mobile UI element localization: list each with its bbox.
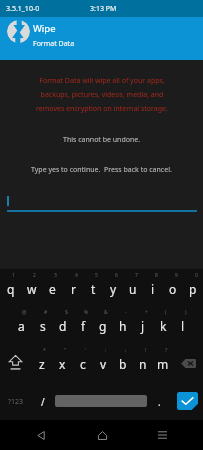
button[interactable]: ) xyxy=(173,306,193,344)
button[interactable]: Recents xyxy=(142,420,182,450)
staticText: o xyxy=(169,281,177,297)
staticText: # xyxy=(44,309,48,316)
button[interactable]: ! xyxy=(133,344,153,382)
staticText: 3 xyxy=(54,272,57,279)
button[interactable]: % xyxy=(73,306,93,344)
staticText: u xyxy=(129,281,137,297)
button[interactable]: Home xyxy=(82,420,122,450)
staticText: g xyxy=(99,318,107,334)
button[interactable]: ' xyxy=(73,344,93,382)
staticText: Format Data will wipe all of your apps, … xyxy=(36,76,168,113)
button[interactable]: . xyxy=(147,382,171,420)
staticText: " xyxy=(64,347,67,354)
staticText: v xyxy=(100,356,107,372)
staticText: * xyxy=(43,347,46,354)
button[interactable]: $ xyxy=(53,306,73,344)
staticText: z xyxy=(39,356,45,372)
staticText: a xyxy=(18,318,25,334)
staticText: : xyxy=(105,347,107,354)
staticText: ! xyxy=(145,347,147,354)
staticText: / xyxy=(41,395,45,409)
staticText: 2 xyxy=(33,272,36,279)
button[interactable]: " xyxy=(52,344,73,382)
staticText: @ xyxy=(22,309,27,316)
button[interactable]: 7 xyxy=(123,269,143,306)
staticText: j xyxy=(141,318,145,334)
button[interactable]: ( xyxy=(153,306,173,344)
button[interactable]: ? xyxy=(153,344,173,382)
staticText: n xyxy=(139,356,147,372)
staticText: % xyxy=(84,309,89,316)
button[interactable]: Back xyxy=(21,420,61,450)
staticText: . xyxy=(158,395,161,409)
staticText: s xyxy=(40,318,46,334)
staticText: 9 xyxy=(175,272,178,279)
staticText: ( xyxy=(165,309,167,316)
button[interactable]: 5 xyxy=(83,269,103,306)
button[interactable]: Backspace xyxy=(173,344,203,382)
button[interactable]: Enter xyxy=(171,382,203,420)
button[interactable]: : xyxy=(93,344,113,382)
button[interactable]: Shift xyxy=(0,344,31,382)
staticText: Format Data xyxy=(33,39,75,49)
staticText: ' xyxy=(85,347,87,354)
button[interactable]: & xyxy=(93,306,113,344)
staticText: t xyxy=(91,281,96,297)
staticText: b xyxy=(119,356,127,372)
staticText: & xyxy=(104,309,108,316)
staticText: ?123 xyxy=(8,397,24,407)
staticText: x xyxy=(59,356,66,372)
staticText: 0 xyxy=(195,272,198,279)
staticText: l xyxy=(181,318,185,334)
staticText: This cannot be undone. xyxy=(63,135,141,145)
staticText: $ xyxy=(65,309,68,316)
staticText: c xyxy=(80,356,86,372)
button[interactable]: @ xyxy=(11,306,32,344)
staticText: d xyxy=(59,318,67,334)
button[interactable]: 9 xyxy=(163,269,183,306)
staticText: 6 xyxy=(115,272,118,279)
staticText: 3.5.1_10-0 xyxy=(6,4,40,14)
button[interactable]: 0 xyxy=(183,269,203,306)
staticText: f xyxy=(81,318,86,334)
staticText: ? xyxy=(165,347,168,354)
button[interactable]: Wipe xyxy=(0,17,203,60)
staticText: h xyxy=(119,318,127,334)
button[interactable]: 1 xyxy=(0,269,21,306)
staticText: - xyxy=(125,309,127,316)
button[interactable]: - xyxy=(113,306,133,344)
staticText: 8 xyxy=(155,272,158,279)
button[interactable]: ; xyxy=(113,344,133,382)
staticText: y xyxy=(110,281,117,297)
staticText: ; xyxy=(125,347,127,354)
button[interactable]: # xyxy=(32,306,53,344)
button[interactable]: 2 xyxy=(21,269,42,306)
staticText: 3:13 PM xyxy=(90,4,117,14)
staticText: + xyxy=(145,309,148,316)
staticText: 7 xyxy=(135,272,138,279)
button[interactable]: Space xyxy=(55,395,147,407)
staticText: Type yes to continue. Press back to canc… xyxy=(31,165,172,175)
staticText: p xyxy=(189,281,197,297)
staticText: Wipe xyxy=(33,22,56,35)
staticText: w xyxy=(27,281,37,297)
staticText: q xyxy=(7,281,15,297)
staticText: i xyxy=(151,281,155,297)
staticText: m xyxy=(157,356,169,372)
button[interactable]: 8 xyxy=(143,269,163,306)
button[interactable]: ?123 xyxy=(0,382,31,420)
button[interactable]: / xyxy=(31,382,55,420)
staticText: 5 xyxy=(95,272,98,279)
staticText: 1 xyxy=(12,272,15,279)
button[interactable]: + xyxy=(133,306,153,344)
button[interactable]: 4 xyxy=(63,269,83,306)
staticText: k xyxy=(160,318,167,334)
staticText: e xyxy=(49,281,56,297)
button[interactable]: 6 xyxy=(103,269,123,306)
staticText: ) xyxy=(185,309,187,316)
button[interactable]: * xyxy=(31,344,52,382)
button[interactable]: 3 xyxy=(42,269,63,306)
staticText: 4 xyxy=(75,272,78,279)
staticText: r xyxy=(71,281,76,297)
